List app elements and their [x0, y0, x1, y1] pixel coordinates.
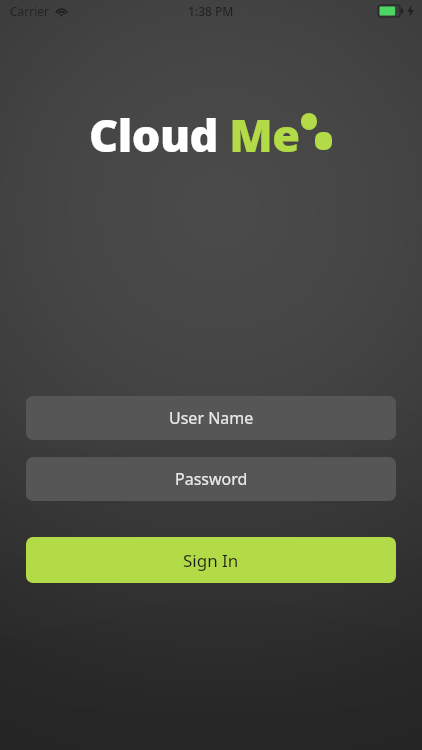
staticText: 1:38 PM: [188, 3, 234, 19]
button[interactable]: Sign In: [26, 537, 396, 583]
staticText: Sign In: [183, 549, 239, 572]
staticText: Password: [175, 468, 248, 490]
staticText: Carrier: [10, 3, 50, 19]
staticText: User Name: [169, 407, 254, 429]
button[interactable]: Password: [26, 457, 396, 501]
button[interactable]: User Name: [26, 396, 396, 440]
staticText: Cloud Me: [89, 104, 300, 165]
